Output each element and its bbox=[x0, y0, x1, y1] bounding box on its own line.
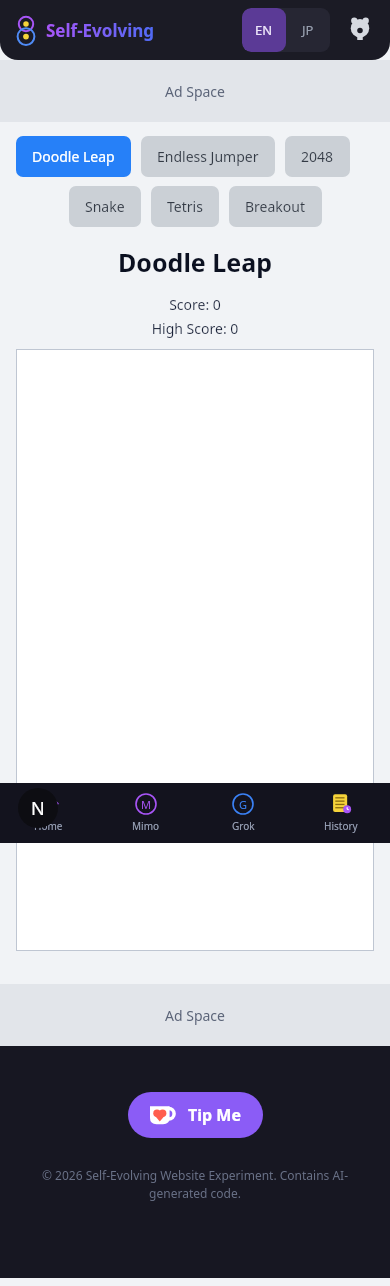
staticText: G bbox=[239, 797, 248, 812]
button[interactable]: 2048 bbox=[285, 136, 350, 177]
staticText: Ad Space bbox=[165, 82, 225, 101]
button[interactable]: Snake bbox=[69, 186, 141, 227]
button[interactable]: G bbox=[194, 787, 292, 839]
staticText: 2048 bbox=[301, 147, 334, 166]
button[interactable]: Endless Jumper bbox=[141, 136, 275, 177]
staticText: M bbox=[141, 797, 151, 812]
button[interactable]: Notion bbox=[18, 788, 58, 828]
button[interactable]: Tip Me bbox=[128, 1092, 263, 1138]
staticText: Endless Jumper bbox=[157, 147, 259, 166]
staticText: Tip Me bbox=[188, 1104, 241, 1126]
button[interactable]: EN bbox=[242, 8, 286, 52]
staticText: Ad Space bbox=[165, 1006, 225, 1025]
staticText: Score: 0 bbox=[0, 295, 390, 314]
button[interactable]: GitHub bbox=[342, 12, 378, 48]
button[interactable]: History bbox=[292, 787, 390, 839]
staticText: Snake bbox=[85, 197, 125, 216]
staticText: © 2026 Self-Evolving Website Experiment.… bbox=[20, 1167, 370, 1202]
button[interactable]: JP bbox=[286, 8, 330, 52]
staticText: History bbox=[324, 819, 358, 833]
staticText: Mimo bbox=[132, 819, 160, 833]
staticText: High Score: 0 bbox=[0, 319, 390, 338]
button[interactable]: M bbox=[97, 787, 194, 839]
staticText: Doodle Leap bbox=[32, 147, 115, 166]
staticText: Tetris bbox=[167, 197, 203, 216]
staticText: Self-Evolving bbox=[46, 19, 155, 42]
staticText: Home bbox=[34, 819, 63, 833]
button[interactable]: Doodle Leap bbox=[16, 136, 131, 177]
staticText: EN bbox=[255, 21, 273, 39]
button[interactable]: Breakout bbox=[229, 186, 322, 227]
staticText: Breakout bbox=[245, 197, 306, 216]
staticText: JP bbox=[302, 21, 314, 39]
staticText: Grok bbox=[232, 819, 255, 833]
staticText: Doodle Leap bbox=[0, 245, 390, 279]
button[interactable]: Self-Evolving bbox=[16, 15, 155, 45]
staticText: N bbox=[31, 796, 45, 821]
button[interactable]: Tetris bbox=[151, 186, 219, 227]
button[interactable]: Home bbox=[0, 787, 97, 839]
